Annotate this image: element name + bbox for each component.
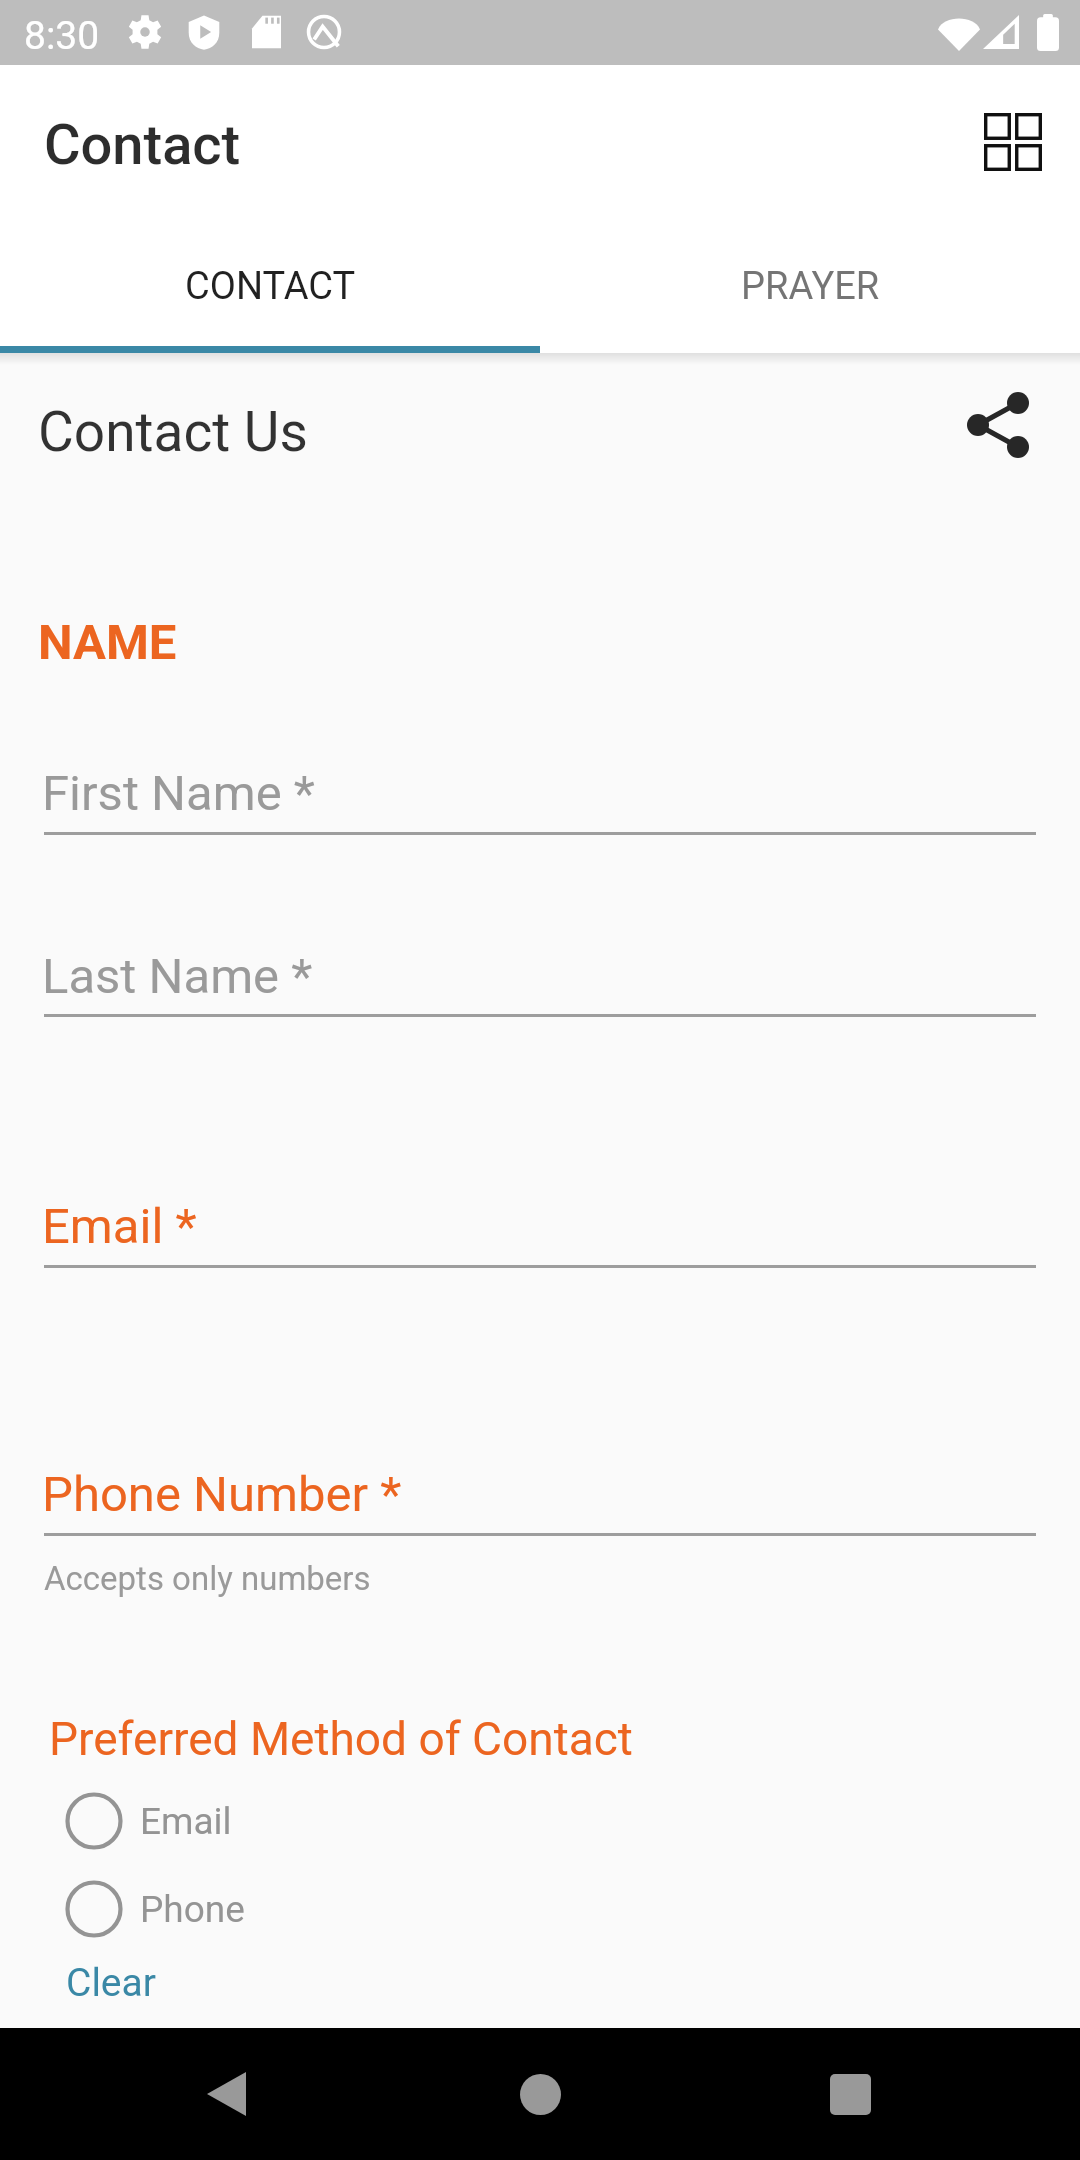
staticText: Email * xyxy=(42,1198,197,1255)
staticText: Preferred Method of Contact xyxy=(49,1712,633,1766)
staticText: Contact xyxy=(44,112,241,178)
button[interactable]: Phone xyxy=(56,1869,356,1949)
staticText: Phone xyxy=(140,1888,245,1931)
staticText: CONTACT xyxy=(185,264,356,309)
button[interactable]: Home xyxy=(485,2039,595,2149)
staticText: Phone Number * xyxy=(42,1466,402,1523)
button[interactable]: Back xyxy=(171,2039,281,2149)
button[interactable]: Share xyxy=(950,377,1046,473)
staticText: PRAYER xyxy=(741,264,880,309)
staticText: Email xyxy=(140,1800,232,1843)
staticText: Contact Us xyxy=(38,400,308,464)
button[interactable]: Grid layout xyxy=(965,94,1061,190)
button[interactable]: Recent apps xyxy=(795,2039,905,2149)
staticText: Last Name * xyxy=(42,948,313,1005)
staticText: Accepts only numbers xyxy=(44,1559,371,1598)
staticText: First Name * xyxy=(42,765,315,822)
staticText: NAME xyxy=(38,614,177,671)
staticText: 8:30 xyxy=(24,13,100,59)
button[interactable]: Clear xyxy=(65,1960,157,2006)
button[interactable]: Email xyxy=(56,1781,356,1861)
button[interactable]: CONTACT xyxy=(0,233,540,339)
button[interactable]: PRAYER xyxy=(540,233,1080,339)
